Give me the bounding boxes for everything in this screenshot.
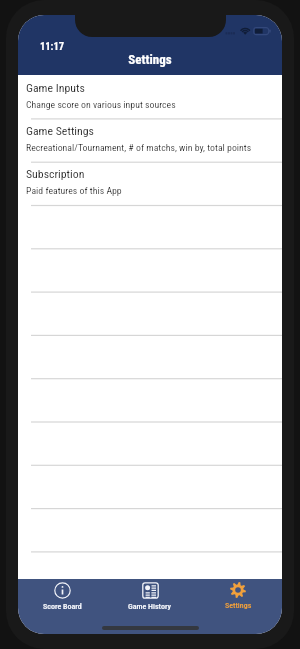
button[interactable]: Settings — [194, 579, 282, 613]
staticText: Game Settings — [26, 124, 94, 138]
staticText: Game Inputs — [26, 81, 85, 95]
button[interactable]: Subscription — [18, 161, 282, 204]
staticText: Settings — [225, 601, 252, 610]
button[interactable]: Game Settings — [18, 118, 282, 161]
button[interactable]: Score Board — [18, 579, 106, 613]
staticText: Recreational/Tournament, # of matchs, wi… — [26, 142, 252, 153]
staticText: 11:17 — [40, 40, 65, 51]
button[interactable]: Game Inputs — [18, 75, 282, 118]
button[interactable]: Game History — [106, 579, 194, 613]
staticText: Change score on various input sources — [26, 99, 176, 110]
staticText: Paid features of this App — [26, 185, 122, 196]
staticText: Game History — [128, 602, 172, 611]
staticText: Settings — [128, 52, 172, 67]
staticText: Subscription — [26, 167, 85, 181]
staticText: Score Board — [43, 602, 82, 611]
